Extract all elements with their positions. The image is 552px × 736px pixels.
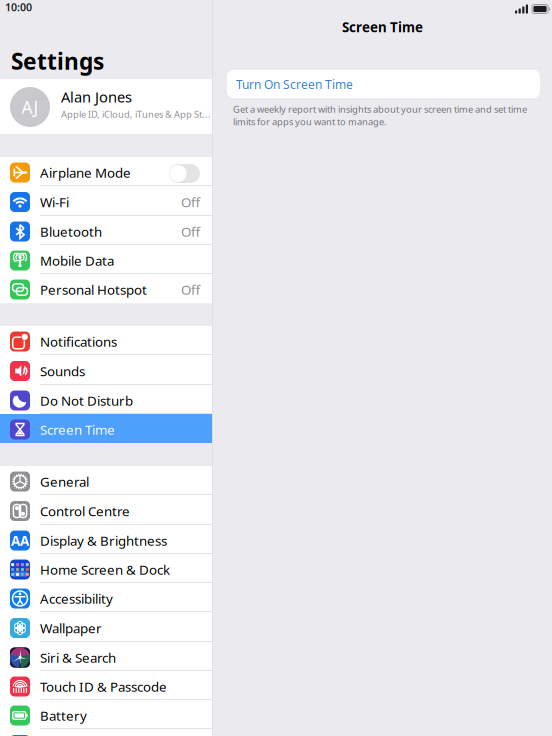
staticText: Off [181, 281, 200, 298]
button[interactable]: Touch ID & Passcode [0, 671, 212, 700]
button[interactable]: Bluetooth [0, 216, 212, 245]
button[interactable]: Control Centre [0, 495, 212, 525]
button[interactable]: Do Not Disturb [0, 385, 212, 414]
staticText: AA [11, 532, 29, 549]
staticText: Get a weekly report with insights about … [233, 103, 527, 128]
staticText: Display & Brightness [40, 532, 167, 549]
staticText: Mobile Data [40, 252, 114, 269]
staticText: Control Centre [40, 502, 130, 520]
button[interactable]: Home Screen & Dock [0, 554, 212, 583]
staticText: Wi-Fi [40, 193, 69, 211]
staticText: Bluetooth [40, 223, 102, 240]
staticText: Off [181, 193, 200, 211]
button[interactable]: Accessibility [0, 583, 212, 612]
button[interactable]: Wallpaper [0, 612, 212, 642]
staticText: Do Not Disturb [40, 392, 133, 409]
staticText: Apple ID, iCloud, iTunes & App St... [61, 108, 211, 120]
staticText: Screen Time [342, 18, 423, 36]
staticText: Battery [40, 707, 87, 724]
staticText: Home Screen & Dock [40, 561, 170, 578]
staticText: Accessibility [40, 590, 113, 607]
button[interactable]: General [0, 466, 212, 495]
button[interactable]: Siri & Search [0, 642, 212, 671]
button[interactable]: Sounds [0, 355, 212, 385]
staticText: Sounds [40, 362, 85, 380]
button[interactable]: Wi-Fi [0, 186, 212, 216]
button[interactable]: AA [0, 525, 212, 554]
button[interactable]: Privacy [0, 729, 212, 736]
button[interactable]: Airplane Mode [0, 157, 212, 186]
button[interactable]: Battery [0, 700, 212, 729]
staticText: Screen Time [40, 421, 115, 438]
staticText: Off [181, 223, 200, 240]
button[interactable]: Turn On Screen Time [227, 70, 540, 98]
staticText: Turn On Screen Time [236, 76, 353, 92]
button[interactable]: Personal Hotspot [0, 274, 212, 303]
button[interactable]: Mobile Data [0, 245, 212, 274]
staticText: Notifications [40, 333, 117, 350]
staticText: Settings [11, 46, 104, 76]
staticText: Airplane Mode [40, 164, 131, 181]
staticText: AJ [21, 95, 38, 118]
staticText: Personal Hotspot [40, 281, 147, 298]
button[interactable]: AJ [0, 79, 212, 134]
staticText: General [40, 473, 89, 490]
staticText: Wallpaper [40, 619, 102, 637]
staticText: Alan Jones [61, 87, 132, 106]
staticText: 10:00 [5, 0, 32, 14]
button[interactable]: Notifications [0, 326, 212, 355]
button[interactable]: Screen Time [0, 414, 212, 443]
staticText: Siri & Search [40, 649, 116, 666]
staticText: Touch ID & Passcode [40, 678, 167, 695]
